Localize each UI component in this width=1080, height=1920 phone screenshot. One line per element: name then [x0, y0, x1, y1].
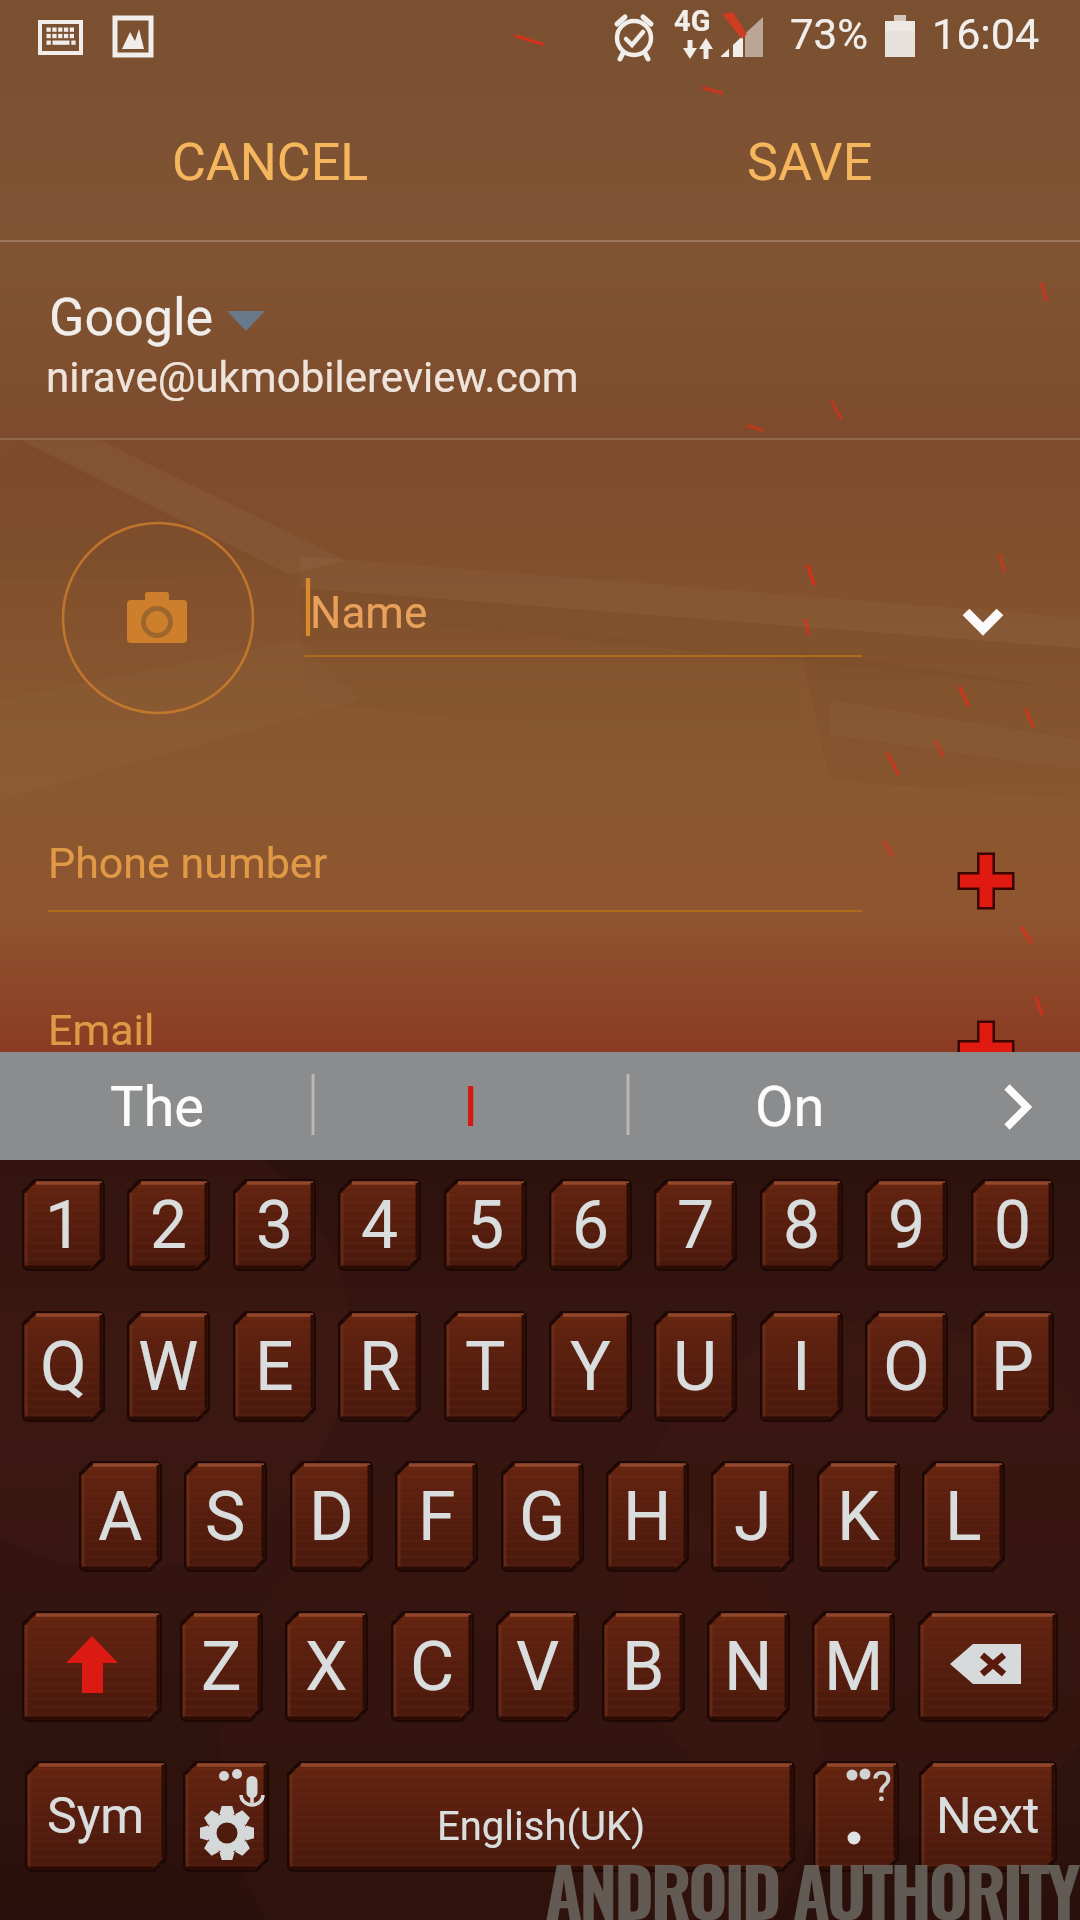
button[interactable]: P — [971, 1311, 1054, 1422]
button[interactable]: Add field — [955, 850, 1019, 914]
button[interactable]: 6 — [549, 1179, 632, 1271]
button[interactable]: 9 — [865, 1179, 948, 1271]
button[interactable]: F — [395, 1461, 478, 1572]
staticText: K — [837, 1477, 880, 1557]
button[interactable]: H — [606, 1461, 689, 1572]
staticText: 7 — [677, 1187, 715, 1264]
button[interactable]: 8 — [760, 1179, 843, 1271]
staticText: V — [516, 1627, 560, 1707]
button[interactable]: More suggestions — [959, 1052, 1080, 1160]
staticText: 73% — [790, 10, 868, 59]
staticText: 9 — [888, 1187, 926, 1264]
staticText: 16:04 — [932, 9, 1040, 59]
staticText: J — [734, 1477, 772, 1557]
button[interactable]: Name — [0, 560, 1080, 680]
button[interactable]: 2 — [127, 1179, 210, 1271]
button[interactable]: E — [233, 1311, 316, 1422]
button[interactable]: J — [711, 1461, 794, 1572]
staticText: Q — [40, 1327, 87, 1407]
staticText: 6 — [572, 1187, 610, 1264]
button[interactable]: Q — [22, 1311, 105, 1422]
button[interactable]: Add photo — [62, 522, 254, 714]
button[interactable]: Next — [919, 1761, 1057, 1872]
button[interactable]: Phone number — [0, 830, 900, 940]
button[interactable]: T — [444, 1311, 527, 1422]
button[interactable]: X — [285, 1611, 368, 1722]
staticText: 4 — [361, 1187, 399, 1264]
button[interactable]: L — [922, 1461, 1005, 1572]
button[interactable]: CANCEL — [0, 86, 540, 231]
staticText: X — [305, 1627, 348, 1707]
button[interactable]: R — [338, 1311, 421, 1422]
staticText: S — [205, 1477, 246, 1557]
staticText: 2 — [150, 1187, 188, 1264]
button[interactable]: On — [625, 1052, 955, 1160]
button[interactable]: N — [707, 1611, 790, 1722]
staticText: P — [991, 1327, 1034, 1407]
staticText: C — [410, 1627, 455, 1707]
button[interactable]: Expand name fields — [938, 572, 1030, 664]
button[interactable]: Backspace — [918, 1611, 1058, 1722]
button[interactable]: W — [127, 1311, 210, 1422]
button[interactable]: Y — [549, 1311, 632, 1422]
staticText: ? — [872, 1762, 892, 1811]
staticText: Name — [310, 587, 428, 639]
staticText: H — [623, 1477, 672, 1557]
button[interactable]: V — [496, 1611, 579, 1722]
staticText: I — [792, 1327, 811, 1407]
staticText: B — [622, 1627, 665, 1707]
staticText: O — [883, 1327, 930, 1407]
staticText: The — [110, 1074, 204, 1140]
button[interactable]: G — [501, 1461, 584, 1572]
staticText: Next — [936, 1787, 1040, 1846]
button[interactable]: M — [812, 1611, 895, 1722]
button[interactable]: U — [654, 1311, 737, 1422]
staticText: W — [138, 1327, 199, 1407]
button[interactable]: 1 — [22, 1179, 105, 1271]
button[interactable]: B — [602, 1611, 685, 1722]
staticText: N — [724, 1627, 773, 1707]
button[interactable]: I — [313, 1052, 629, 1160]
staticText: F — [418, 1477, 456, 1557]
staticText: 4G — [674, 4, 711, 38]
button[interactable]: 5 — [444, 1179, 527, 1271]
staticText: CANCEL — [172, 132, 369, 193]
staticText: nirave@ukmobilereview.com — [46, 353, 579, 402]
button[interactable]: S — [184, 1461, 267, 1572]
button[interactable]: Period — [813, 1761, 899, 1872]
button[interactable]: Google — [0, 243, 1080, 439]
button[interactable]: SAVE — [540, 86, 1080, 231]
staticText: I — [463, 1074, 479, 1140]
button[interactable]: 4 — [338, 1179, 421, 1271]
button[interactable]: The — [0, 1052, 313, 1160]
button[interactable]: Shift — [22, 1611, 162, 1722]
staticText: 1 — [45, 1187, 83, 1264]
button[interactable]: Email — [0, 998, 900, 1052]
staticText: 0 — [994, 1187, 1032, 1264]
button[interactable]: I — [760, 1311, 843, 1422]
staticText: L — [945, 1477, 982, 1557]
staticText: Z — [201, 1627, 242, 1707]
button[interactable]: O — [865, 1311, 948, 1422]
staticText: On — [755, 1074, 825, 1140]
button[interactable]: C — [391, 1611, 474, 1722]
button[interactable]: Z — [180, 1611, 263, 1722]
button[interactable]: Sym — [25, 1761, 167, 1872]
button[interactable]: 3 — [233, 1179, 316, 1271]
button[interactable]: Keyboard settings — [183, 1761, 269, 1872]
staticText: 8 — [783, 1187, 821, 1264]
button[interactable]: A — [79, 1461, 162, 1572]
staticText: T — [465, 1327, 506, 1407]
staticText: G — [519, 1477, 566, 1557]
staticText: SAVE — [747, 132, 873, 193]
button[interactable]: Add field — [955, 1018, 1019, 1082]
button[interactable]: 0 — [971, 1179, 1054, 1271]
staticText: 5 — [467, 1187, 505, 1264]
button[interactable]: D — [290, 1461, 373, 1572]
staticText: Google — [49, 287, 214, 348]
button[interactable]: 7 — [654, 1179, 737, 1271]
staticText: 3 — [256, 1187, 294, 1264]
button[interactable]: K — [817, 1461, 900, 1572]
staticText: R — [359, 1327, 401, 1407]
button[interactable]: English(UK) — [287, 1761, 795, 1872]
